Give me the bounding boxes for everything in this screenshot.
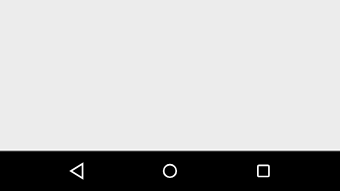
- button[interactable]: Back: [57, 151, 97, 191]
- button[interactable]: Home: [150, 151, 190, 191]
- button[interactable]: Recent apps: [243, 151, 283, 191]
